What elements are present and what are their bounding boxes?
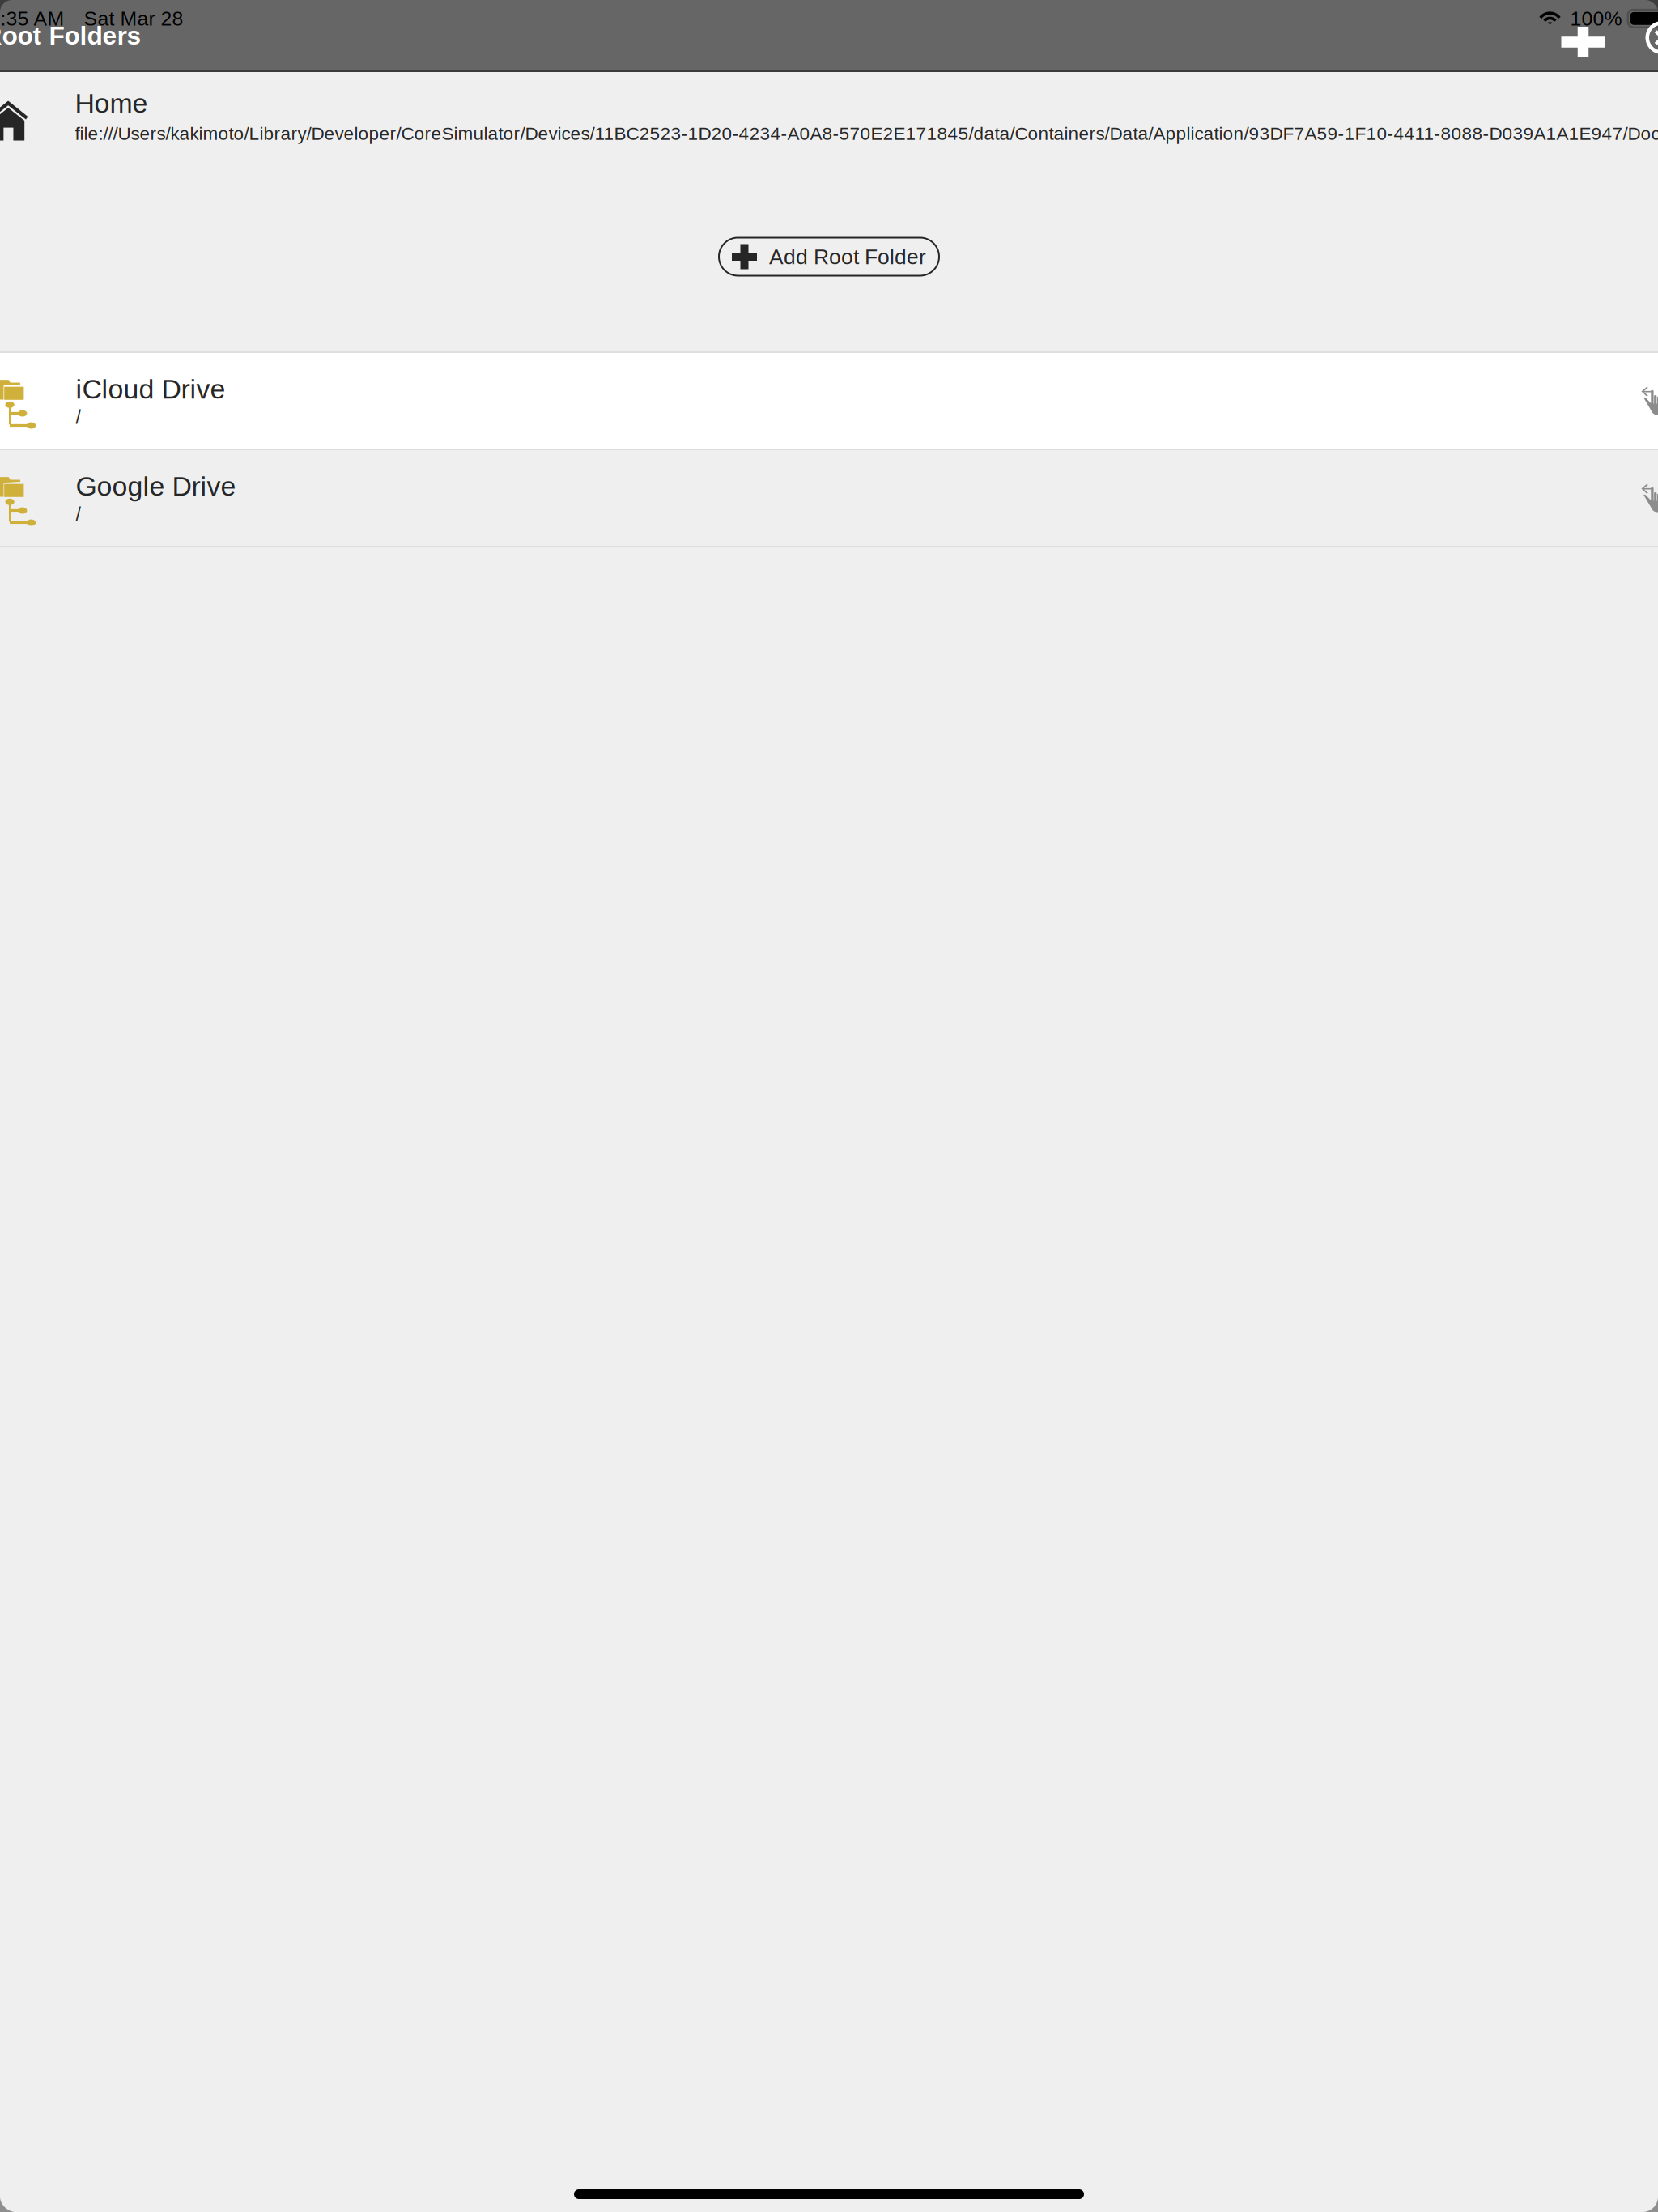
button[interactable]: Close (1616, 13, 1658, 58)
staticText: Home (75, 88, 148, 118)
staticText: / (76, 504, 81, 525)
staticText: 1:35 AM (0, 7, 64, 30)
staticText: Sat Mar 28 (84, 7, 183, 30)
staticText: Root Folders (0, 21, 141, 50)
staticText: / (76, 407, 81, 428)
button[interactable]: Add Root Folder (719, 228, 939, 276)
staticText: iCloud Drive (76, 374, 225, 404)
staticText: Google Drive (76, 471, 236, 502)
staticText: 100% (1570, 7, 1622, 30)
staticText: Add Root Folder (769, 245, 926, 269)
button[interactable]: Google Drive (0, 450, 1658, 546)
button[interactable]: iCloud Drive (0, 353, 1658, 449)
button[interactable]: Add root folder (1550, 13, 1616, 58)
staticText: file:///Users/kakimoto/Library/Developer… (75, 123, 1658, 144)
